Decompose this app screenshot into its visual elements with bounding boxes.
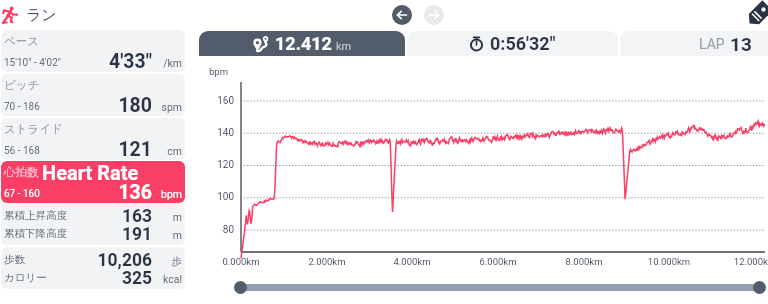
staticText: 120 [206,159,234,171]
staticText: m [142,229,182,241]
staticText: 心拍数 [4,165,39,179]
staticText: 56 - 168 [4,145,40,157]
staticText: cm [142,145,182,157]
staticText: ピッチ [4,78,40,92]
button[interactable]: ピッチ [1,74,185,116]
staticText: 12.000km [725,256,768,267]
button[interactable]: 0:56'32" [407,31,618,56]
staticText: 6.000km [468,256,528,267]
button[interactable]: Range start [234,281,247,294]
staticText: km [336,40,352,53]
button[interactable]: LAP [620,31,768,56]
button[interactable]: 心拍数 [1,161,185,203]
staticText: bpm [209,66,228,77]
staticText: 10,206 [56,250,152,271]
button[interactable]: Range end [753,281,766,294]
staticText: 10.000km [639,256,699,267]
staticText: 歩数 [4,253,25,266]
button[interactable]: Previous [392,5,412,25]
button[interactable]: ストライド [1,118,185,160]
staticText: LAP [699,36,725,52]
staticText: spm [142,101,182,113]
staticText: 180 [71,94,152,116]
staticText: 140 [206,127,234,139]
button[interactable]: Tag [744,1,768,29]
staticText: 121 [71,138,152,160]
staticText: ストライド [4,122,63,136]
staticText: 累積上昇高度 [4,209,67,222]
staticText: 8.000km [554,256,614,267]
staticText: 136 [71,181,152,203]
staticText: 0.000km [211,256,271,267]
staticText: 163 [56,206,152,227]
staticText: bpm [142,188,182,200]
staticText: 13 [730,33,752,55]
staticText: 67 - 160 [4,188,40,200]
staticText: 2.000km [297,256,357,267]
staticText: Heart Rate [42,161,139,184]
button[interactable]: 累積上昇高度 [1,203,185,245]
staticText: 15'10" - 4'02" [4,57,61,69]
button[interactable]: ペース [1,30,185,72]
staticText: ペース [4,34,40,48]
staticText: m [142,211,182,223]
button[interactable]: Next [424,5,444,25]
staticText: 歩 [142,255,182,268]
staticText: 70 - 186 [4,101,40,113]
staticText: 80 [206,224,234,236]
staticText: 累積下降高度 [4,227,67,240]
staticText: 0:56'32" [490,33,556,54]
staticText: /km [142,57,182,69]
staticText: 325 [56,268,152,289]
staticText: kcal [142,273,182,285]
button[interactable]: 12.412 [199,31,405,56]
staticText: カロリー [4,271,47,284]
staticText: 4'33" [71,50,152,72]
button[interactable]: 歩数 [1,247,185,289]
staticText: 12.412 [275,33,332,54]
staticText: 4.000km [382,256,442,267]
staticText: ラン [26,6,57,25]
staticText: 100 [206,191,234,203]
staticText: 191 [56,224,152,245]
staticText: 160 [206,95,234,107]
